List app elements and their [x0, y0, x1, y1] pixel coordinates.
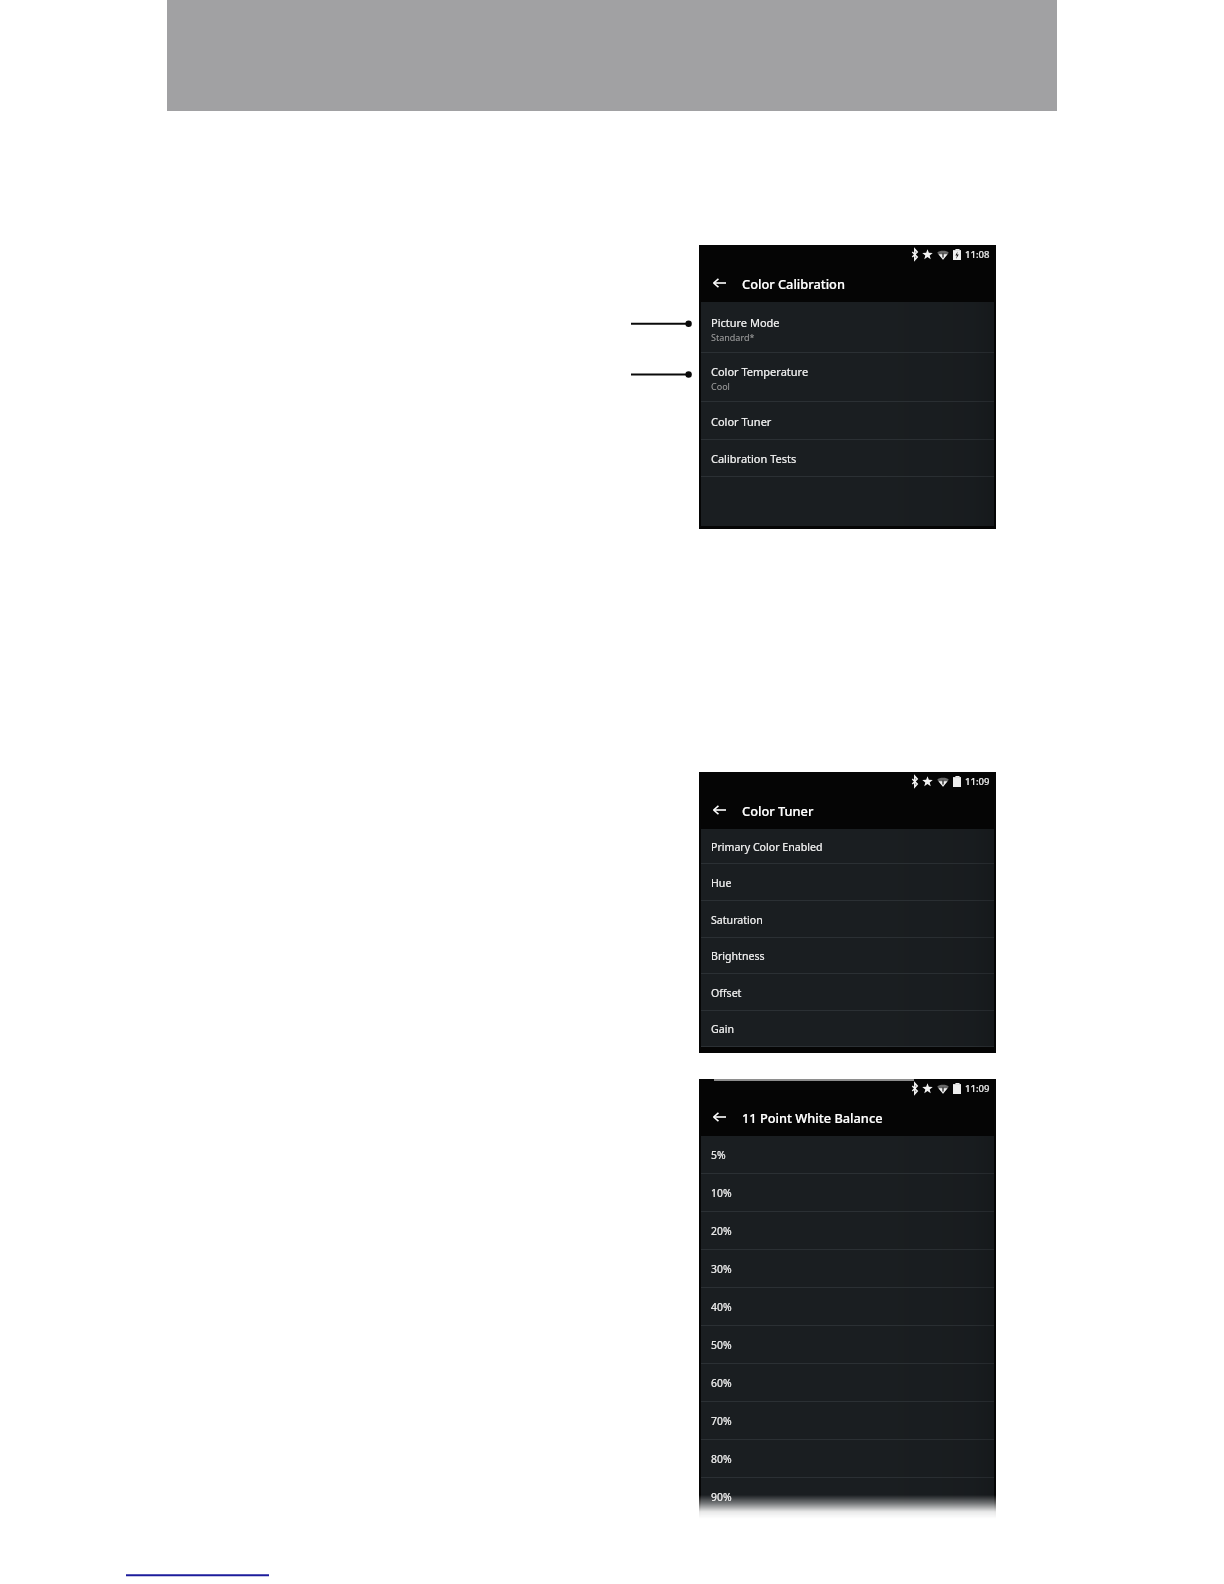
staticText: Gain — [711, 1022, 734, 1036]
staticText: Primary Color Enabled — [711, 840, 823, 854]
staticText: Saturation — [711, 913, 763, 927]
button[interactable]: 5% — [699, 1136, 996, 1174]
button[interactable]: Brightness — [699, 938, 996, 974]
staticText: 80% — [711, 1452, 732, 1466]
button[interactable]: Color Tuner — [699, 402, 996, 440]
staticText: Color Temperature — [711, 364, 809, 379]
button[interactable]: Primary Color Enabled — [699, 829, 996, 864]
button[interactable]: Back — [708, 272, 730, 294]
staticText: 30% — [711, 1262, 732, 1276]
staticText: 10% — [711, 1186, 732, 1200]
button[interactable]: 30% — [699, 1250, 996, 1288]
staticText: 50% — [711, 1338, 732, 1352]
staticText: Standard* — [711, 331, 755, 343]
staticText: 20% — [711, 1224, 732, 1238]
button[interactable]: Picture Mode — [699, 302, 996, 353]
button[interactable]: Saturation — [699, 901, 996, 938]
button[interactable]: 10% — [699, 1174, 996, 1212]
staticText: Hue — [711, 876, 732, 890]
staticText: 40% — [711, 1300, 732, 1314]
staticText: Offset — [711, 986, 742, 1000]
button[interactable]: 90% — [699, 1478, 996, 1516]
staticText: 11:09 — [965, 1082, 990, 1095]
button[interactable]: 60% — [699, 1364, 996, 1402]
staticText: 11:09 — [965, 775, 990, 788]
button[interactable]: 50% — [699, 1326, 996, 1364]
button[interactable]: Back — [708, 799, 730, 821]
button[interactable]: Color Temperature — [699, 353, 996, 402]
staticText: 5% — [711, 1148, 726, 1162]
button[interactable]: Back — [708, 1106, 730, 1128]
staticText: Color Tuner — [711, 414, 772, 429]
button[interactable]: Offset — [699, 974, 996, 1011]
button[interactable]: Calibration Tests — [699, 440, 996, 477]
button[interactable]: 40% — [699, 1288, 996, 1326]
staticText: Picture Mode — [711, 315, 780, 330]
staticText: Brightness — [711, 949, 765, 963]
button[interactable]: 70% — [699, 1402, 996, 1440]
button[interactable]: 20% — [699, 1212, 996, 1250]
staticText: 60% — [711, 1376, 732, 1390]
staticText: Color Calibration — [742, 275, 845, 292]
staticText: Calibration Tests — [711, 451, 797, 466]
staticText: 70% — [711, 1414, 732, 1428]
button[interactable]: 80% — [699, 1440, 996, 1478]
staticText: 11:08 — [965, 248, 990, 261]
button[interactable]: Hue — [699, 864, 996, 901]
button[interactable]: Gain — [699, 1011, 996, 1047]
staticText: Color Tuner — [742, 802, 814, 819]
staticText: Cool — [711, 380, 730, 392]
staticText: 90% — [711, 1490, 732, 1504]
staticText: 11 Point White Balance — [742, 1109, 883, 1126]
